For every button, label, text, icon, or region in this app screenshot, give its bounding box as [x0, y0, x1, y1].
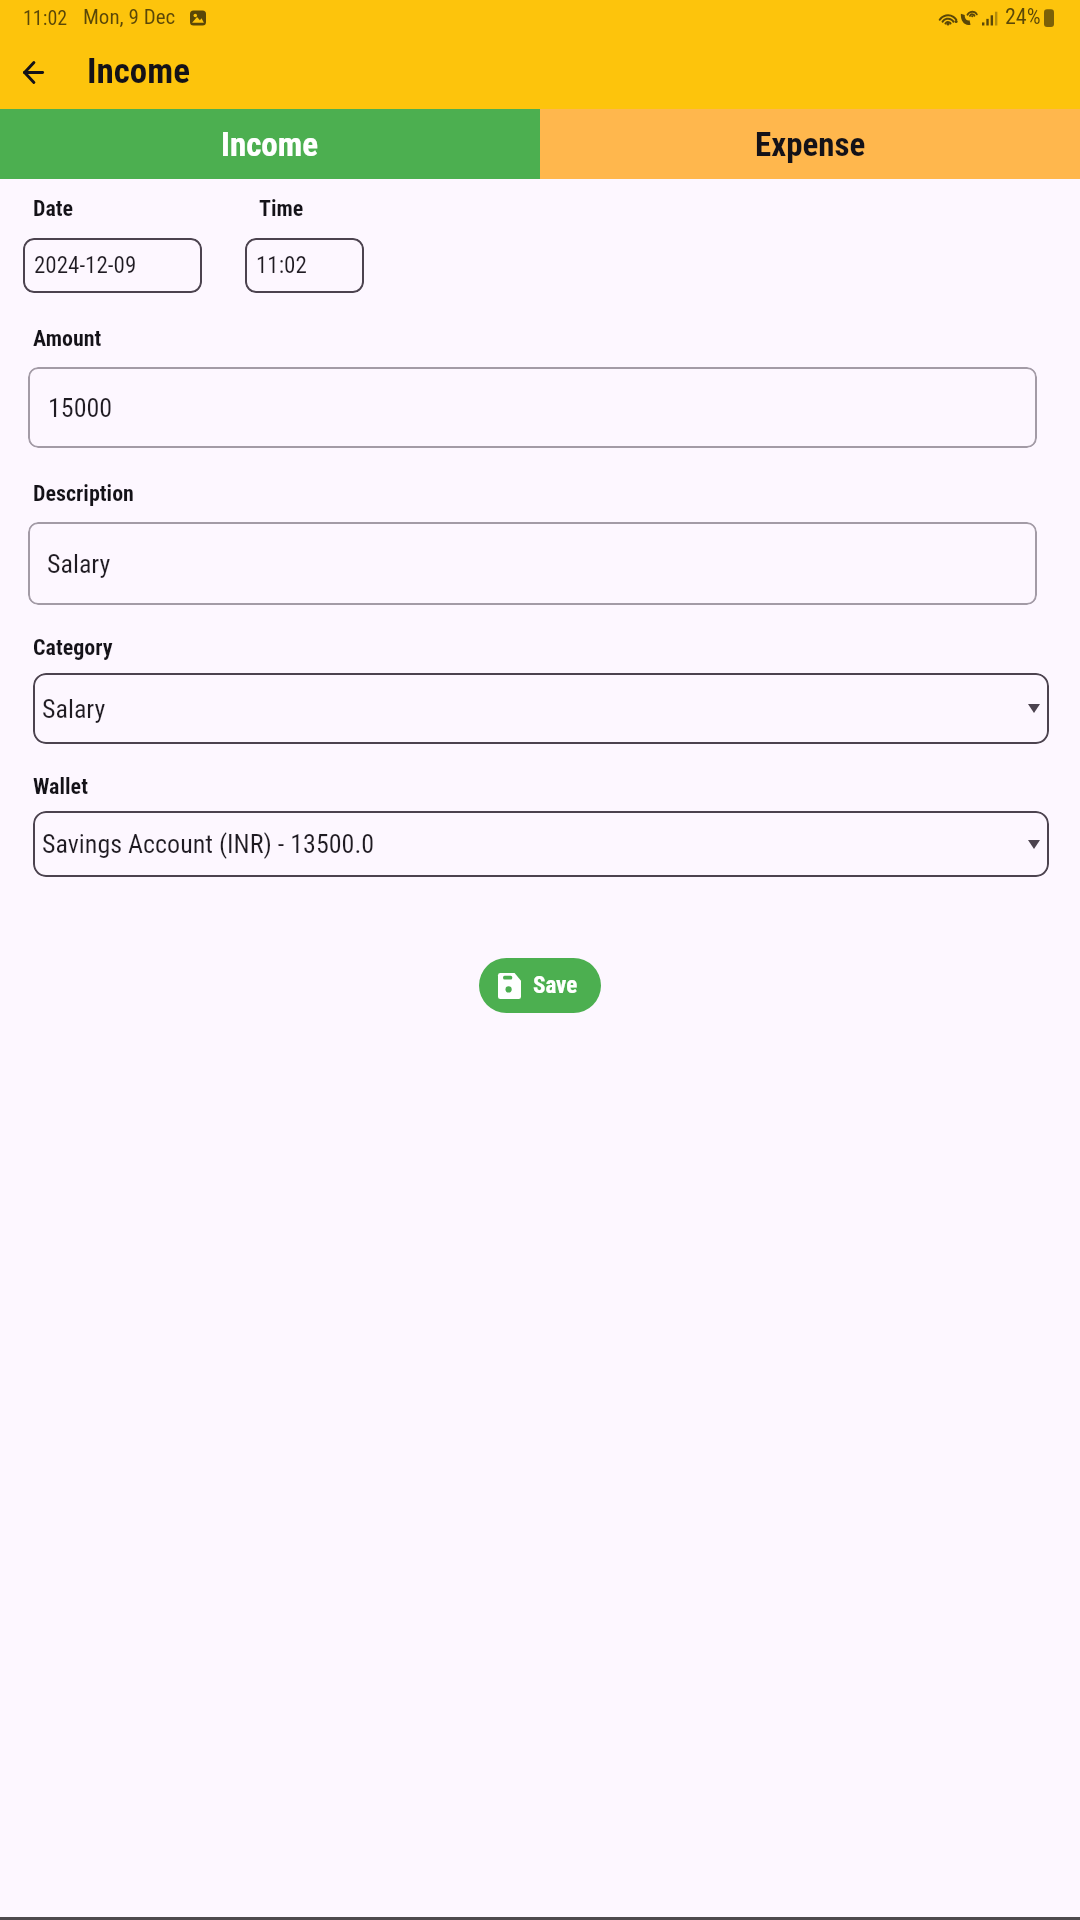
staticText: Wallet	[33, 774, 88, 800]
staticText: Category	[33, 635, 113, 661]
staticText: Income	[221, 125, 319, 164]
staticText: Amount	[33, 326, 102, 352]
staticText: Income	[87, 51, 190, 92]
button[interactable]: Save	[479, 958, 601, 1013]
staticText: Save	[533, 972, 578, 999]
staticText: Salary	[47, 549, 111, 579]
staticText: Expense	[755, 125, 866, 164]
staticText: Savings Account (INR) - 13500.0	[42, 829, 375, 859]
staticText: 11:02	[256, 252, 307, 279]
staticText: Mon, 9 Dec	[83, 5, 176, 30]
button[interactable]: Salary	[28, 522, 1037, 605]
staticText: Description	[33, 481, 134, 507]
button[interactable]: Income	[0, 109, 540, 179]
staticText: Salary	[42, 694, 106, 724]
button[interactable]: Back	[9, 48, 57, 96]
staticText: 15000	[48, 393, 113, 423]
staticText: 11:02	[23, 6, 68, 29]
staticText: 2024-12-09	[34, 252, 137, 279]
button[interactable]: 2024-12-09	[23, 238, 202, 293]
button[interactable]: Savings Account (INR) - 13500.0	[33, 811, 1049, 877]
button[interactable]: Expense	[540, 109, 1080, 179]
button[interactable]: 11:02	[245, 238, 364, 293]
staticText: Time	[259, 196, 304, 222]
button[interactable]: 15000	[28, 367, 1037, 448]
staticText: 24%	[1005, 4, 1041, 30]
button[interactable]: Salary	[33, 673, 1049, 744]
staticText: Date	[33, 196, 74, 222]
